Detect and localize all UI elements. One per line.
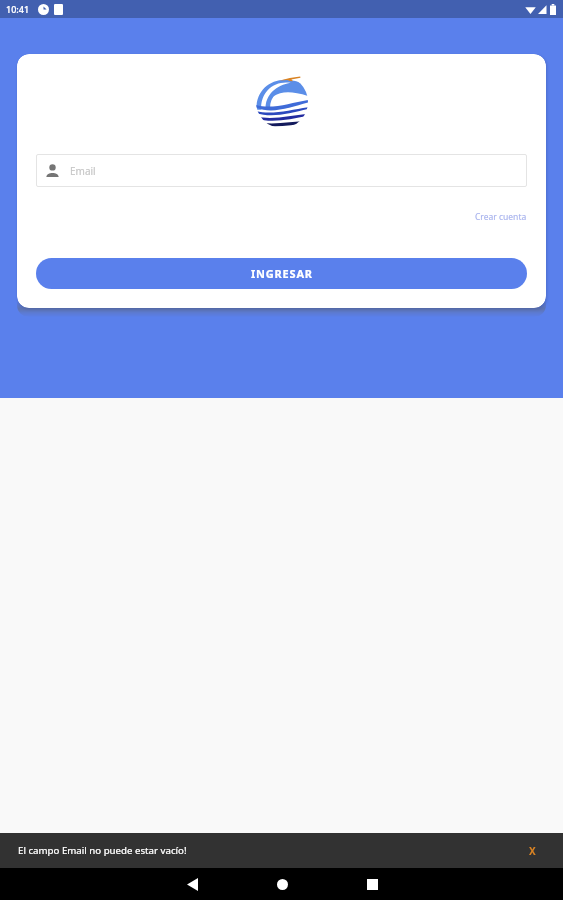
staticText: 10:41	[6, 3, 30, 15]
staticText: INGRESAR	[251, 266, 313, 281]
button[interactable]: Email	[36, 154, 527, 187]
staticText: El campo Email no puede estar vacío!	[18, 844, 187, 857]
staticText: Crear cuenta	[475, 211, 527, 223]
button[interactable]: INGRESAR	[36, 258, 527, 289]
button[interactable]: Crear cuenta	[475, 211, 527, 223]
button[interactable]: Recents	[356, 868, 388, 900]
staticText: Email	[70, 164, 96, 178]
button[interactable]: Home	[266, 868, 298, 900]
button[interactable]: Cerrar	[525, 840, 540, 862]
button[interactable]: Back	[176, 868, 208, 900]
staticText: X	[529, 844, 536, 858]
